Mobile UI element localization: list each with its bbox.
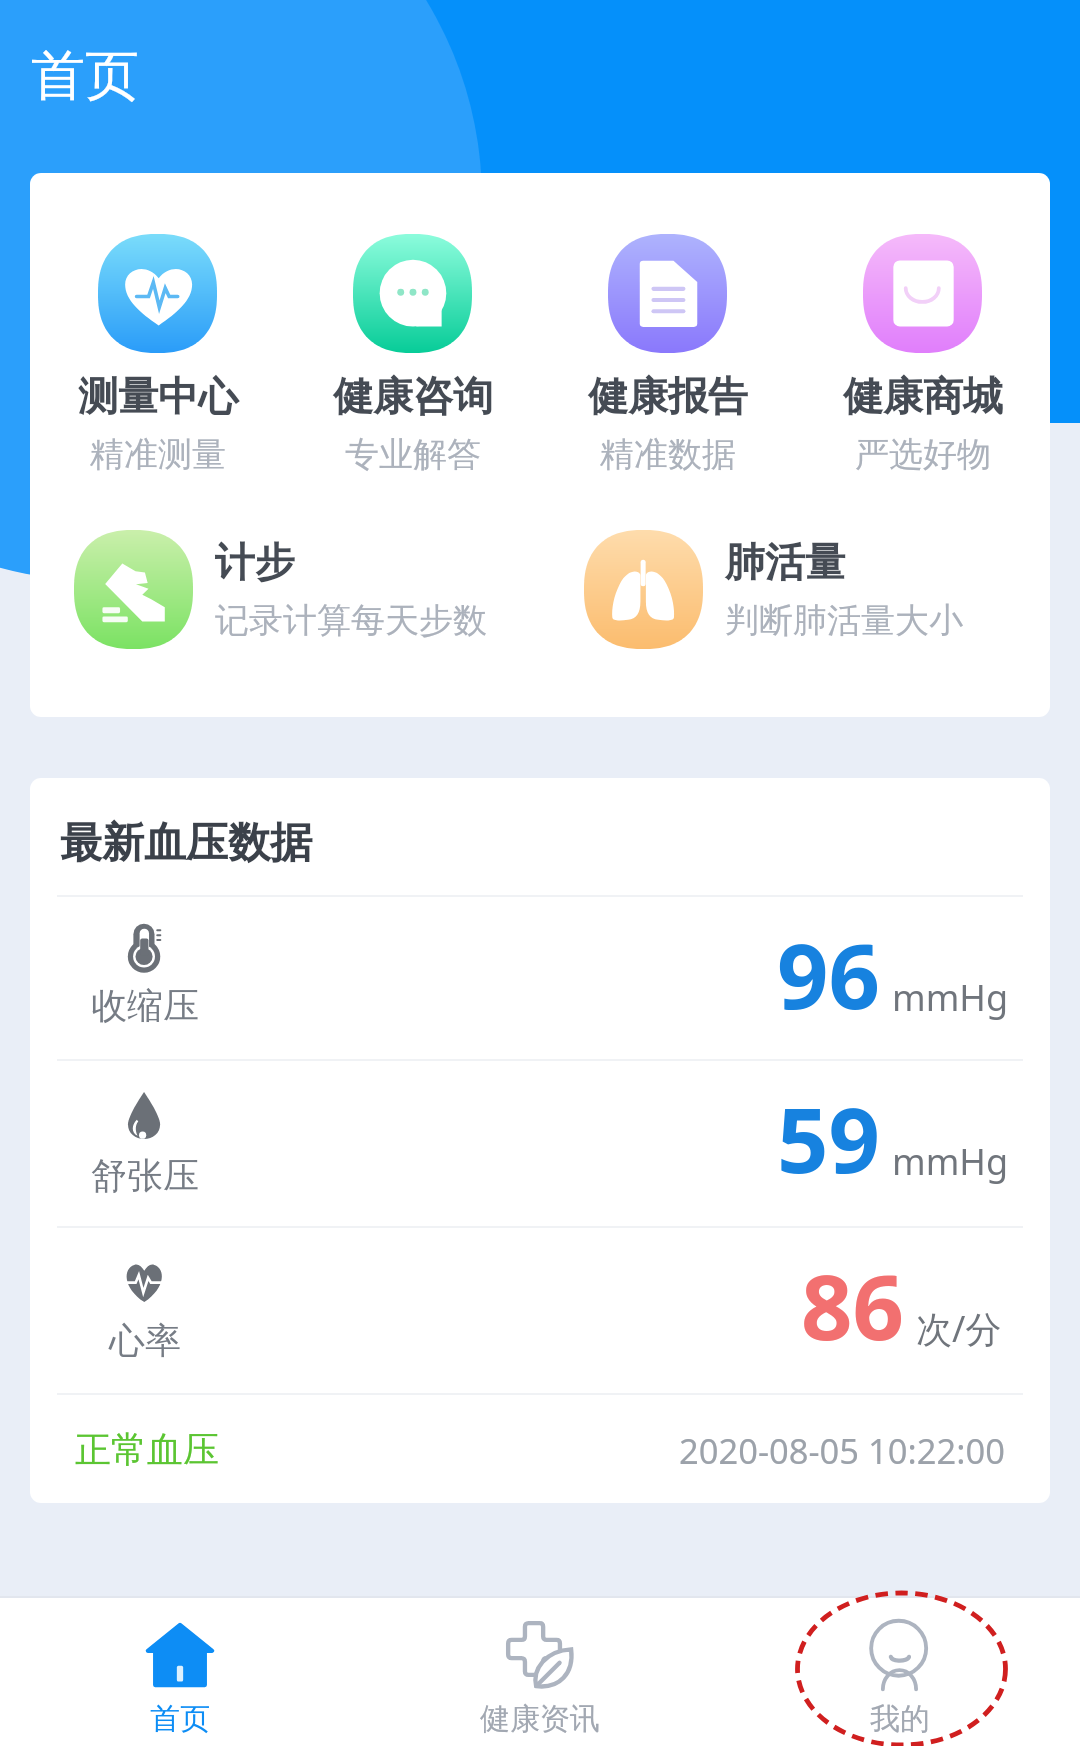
- button[interactable]: 收缩压: [30, 897, 1050, 1059]
- button[interactable]: 肺活量: [540, 530, 1050, 649]
- staticText: 精准数据: [600, 433, 736, 476]
- button[interactable]: 舒张压: [30, 1061, 1050, 1226]
- staticText: 肺活量: [725, 537, 845, 587]
- staticText: 收缩压: [91, 983, 199, 1028]
- staticText: 判断肺活量大小: [725, 599, 963, 642]
- staticText: 测量中心: [78, 371, 238, 421]
- button[interactable]: 健康资讯: [360, 1598, 720, 1746]
- staticText: 专业解答: [345, 433, 481, 476]
- staticText: 健康商城: [843, 371, 1003, 421]
- staticText: 59: [777, 1077, 880, 1200]
- button[interactable]: 健康咨询: [285, 234, 540, 476]
- other: 我的: [865, 1620, 935, 1690]
- staticText: 严选好物: [855, 433, 991, 476]
- button[interactable]: 计步: [30, 530, 540, 649]
- staticText: 正常血压: [75, 1427, 219, 1472]
- staticText: 2020-08-05 10:22:00: [679, 1427, 1005, 1474]
- staticText: 我的: [870, 1700, 930, 1738]
- staticText: 心率: [109, 1318, 181, 1363]
- staticText: 舒张压: [91, 1153, 199, 1198]
- staticText: 健康资讯: [480, 1700, 600, 1738]
- button[interactable]: 健康商城: [795, 234, 1050, 476]
- staticText: 首页: [31, 42, 139, 110]
- button[interactable]: 首页: [0, 1598, 360, 1746]
- staticText: mmHg: [892, 973, 1009, 1022]
- staticText: 96: [777, 913, 880, 1036]
- other: 首页: [145, 1620, 215, 1690]
- staticText: mmHg: [892, 1137, 1009, 1186]
- other: 健康资讯: [505, 1620, 575, 1690]
- staticText: 记录计算每天步数: [215, 599, 487, 642]
- staticText: 健康咨询: [333, 371, 493, 421]
- button[interactable]: 我的: [720, 1598, 1080, 1746]
- staticText: 健康报告: [588, 371, 748, 421]
- button[interactable]: 心率: [30, 1228, 1050, 1393]
- staticText: 计步: [215, 537, 295, 587]
- staticText: 次/分: [916, 1304, 1002, 1353]
- button[interactable]: 健康报告: [540, 234, 795, 476]
- staticText: 首页: [150, 1700, 210, 1738]
- staticText: 最新血压数据: [60, 817, 312, 870]
- staticText: 86: [801, 1244, 904, 1367]
- button[interactable]: 测量中心: [30, 234, 285, 476]
- staticText: 精准测量: [90, 433, 226, 476]
